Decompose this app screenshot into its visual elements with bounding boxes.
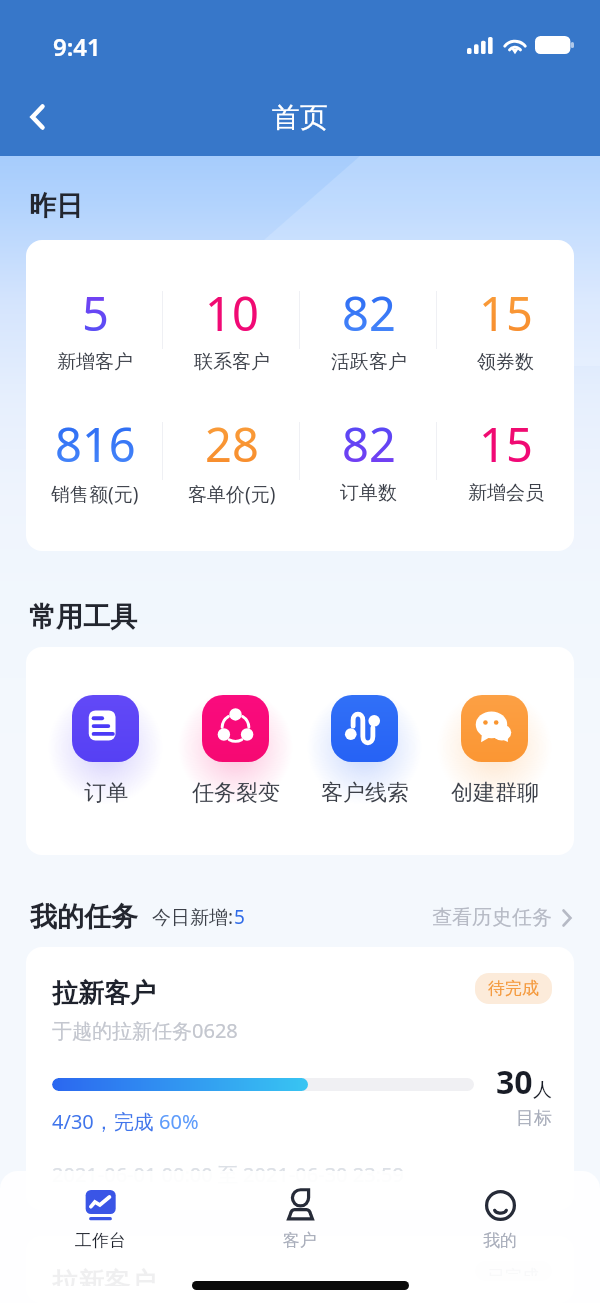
staticText: 5 [82, 281, 109, 345]
staticText: 60% [159, 1108, 199, 1135]
button[interactable]: 查看历史任务 [432, 905, 572, 930]
staticText: 人 [533, 1078, 552, 1102]
staticText: 销售额(元) [51, 481, 139, 507]
button[interactable]: 客户线索 [320, 647, 409, 855]
staticText: 昨日 [29, 189, 83, 223]
staticText: 今日新增: [152, 904, 234, 930]
staticText: 订单 [84, 779, 128, 807]
staticText: 目标 [516, 1107, 552, 1130]
staticText: 我的 [483, 1230, 517, 1251]
staticText: 常用工具 [29, 600, 137, 634]
staticText: 领券数 [477, 350, 534, 374]
staticText: 82 [342, 412, 396, 476]
staticText: 任务裂变 [192, 779, 280, 807]
staticText: 查看历史任务 [432, 905, 552, 930]
staticText: 816 [55, 412, 136, 476]
staticText: 新增客户 [57, 350, 133, 374]
staticText: 5 [234, 904, 245, 930]
staticText: 我的任务 [30, 900, 138, 934]
staticText: 于越的拉新任务0628 [52, 1017, 238, 1044]
staticText: 15 [479, 412, 533, 476]
staticText: 工作台 [75, 1230, 126, 1251]
staticText: 2021-06-01 00:00 至 2021-06-30 23:59 [52, 1161, 404, 1188]
staticText: 9:41 [53, 30, 101, 63]
staticText: 30 [496, 1060, 533, 1104]
staticText: 首页 [272, 100, 328, 135]
staticText: 新增会员 [468, 481, 544, 505]
button[interactable]: Back [14, 94, 60, 140]
staticText: 活跃客户 [331, 350, 407, 374]
button[interactable]: 我的 [400, 1188, 600, 1253]
staticText: 客单价(元) [188, 481, 276, 507]
staticText: 4/30，完成 [52, 1108, 159, 1135]
staticText: 订单数 [340, 481, 397, 505]
staticText: 联系客户 [194, 350, 270, 374]
button[interactable]: 订单 [61, 647, 150, 855]
staticText: 28 [205, 412, 259, 476]
button[interactable]: 创建群聊 [450, 647, 539, 855]
staticText: 待完成 [488, 978, 539, 999]
staticText: 创建群聊 [451, 779, 539, 807]
staticText: 15 [479, 281, 533, 345]
button[interactable]: 工作台 [0, 1188, 200, 1253]
button[interactable]: 任务裂变 [191, 647, 280, 855]
button[interactable]: 客户 [200, 1188, 400, 1253]
staticText: 拉新客户 [52, 1266, 156, 1286]
staticText: 10 [205, 281, 259, 345]
staticText: 82 [342, 281, 396, 345]
staticText: 拉新客户 [52, 977, 156, 1010]
staticText: 客户 [283, 1230, 317, 1251]
staticText: 客户线索 [321, 779, 409, 807]
